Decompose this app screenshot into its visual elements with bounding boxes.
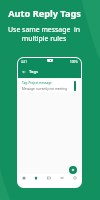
button[interactable]: Add tag <box>69 166 77 174</box>
button[interactable]: Tag: Project message <box>20 79 79 92</box>
staticText: 100% <box>70 60 78 64</box>
staticText: Auto Reply Tags <box>8 7 81 20</box>
button[interactable]: Tab 2 <box>30 176 42 187</box>
button[interactable]: Tab 5 <box>68 176 81 187</box>
button[interactable]: Back <box>21 69 27 75</box>
staticText: Message: currently not meeting <box>22 87 67 91</box>
staticText: Tags <box>29 69 39 75</box>
staticText: Tag: Project message <box>22 81 52 85</box>
staticText: 4:21 <box>21 60 27 64</box>
button[interactable]: Tab 4 <box>55 176 68 187</box>
staticText: Use same message in multiple rules <box>8 25 80 43</box>
button[interactable]: Tab 1 <box>18 176 30 187</box>
button[interactable]: Tab 3 <box>42 176 55 187</box>
